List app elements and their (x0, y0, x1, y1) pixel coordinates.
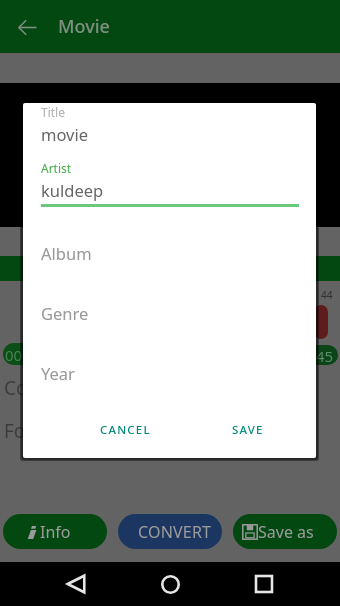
staticText: Genre (41, 302, 89, 324)
staticText: 45 (316, 346, 334, 366)
staticText: CONVERT (138, 521, 212, 543)
staticText: SAVE (232, 422, 264, 438)
button[interactable]: CANCEL (92, 414, 159, 446)
staticText: Movie (58, 14, 110, 39)
staticText: Title (41, 104, 65, 120)
button[interactable]: Home (142, 562, 198, 606)
staticText: Album (41, 242, 92, 264)
staticText: Co (4, 375, 28, 401)
staticText: kuldeep (41, 179, 104, 201)
staticText: Year (41, 362, 75, 384)
staticText: Save as (258, 521, 314, 543)
staticText: Info (40, 521, 71, 543)
staticText: 44 (321, 288, 333, 302)
staticText: movie (41, 123, 89, 145)
staticText: Fo (4, 418, 26, 444)
button[interactable]: Back (9, 9, 45, 45)
staticText: 00 (5, 345, 23, 365)
button[interactable]: Back (48, 562, 104, 606)
button[interactable]: Recent apps (236, 562, 292, 606)
staticText: Artist (41, 160, 72, 176)
button[interactable]: Info (3, 514, 107, 549)
button[interactable]: Save as (233, 514, 337, 549)
button[interactable]: CONVERT (118, 514, 222, 549)
staticText: CANCEL (100, 422, 151, 438)
button[interactable]: SAVE (224, 414, 272, 446)
